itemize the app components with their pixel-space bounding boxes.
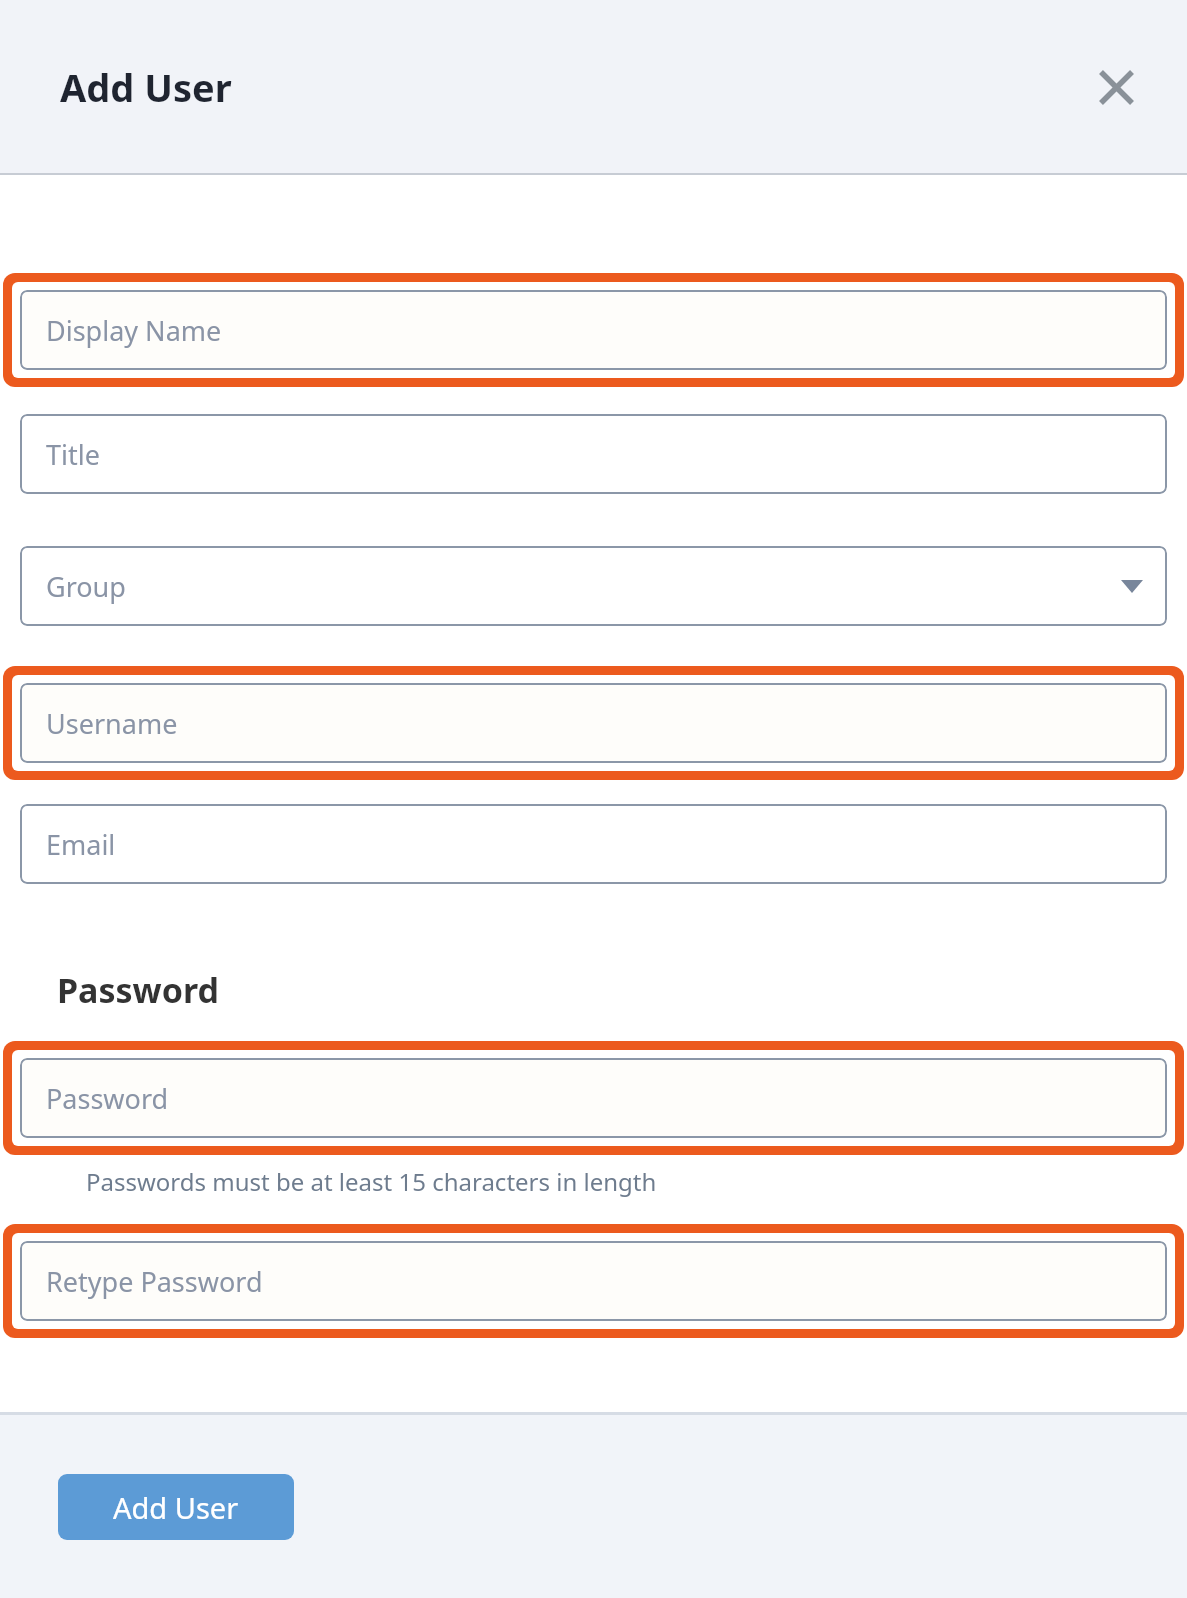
button[interactable]: Username (20, 683, 1167, 763)
button[interactable]: Close (1083, 54, 1149, 120)
button[interactable]: Title (20, 414, 1167, 494)
staticText: Username (46, 705, 178, 742)
staticText: Add User (113, 1488, 239, 1527)
staticText: Password (46, 1080, 169, 1117)
button[interactable]: Retype Password (20, 1241, 1167, 1321)
staticText: Retype Password (46, 1263, 263, 1300)
staticText: Group (46, 568, 126, 605)
staticText: Email (46, 826, 116, 863)
button[interactable]: Add User (58, 1474, 294, 1540)
button[interactable]: Password (20, 1058, 1167, 1138)
button[interactable]: Display Name (20, 290, 1167, 370)
staticText: Passwords must be at least 15 characters… (86, 1165, 657, 1198)
button[interactable]: Group (20, 546, 1167, 626)
button[interactable]: Email (20, 804, 1167, 884)
staticText: Add User (60, 61, 232, 113)
staticText: Password (57, 967, 219, 1013)
staticText: Display Name (46, 312, 222, 349)
staticText: Title (46, 436, 100, 473)
